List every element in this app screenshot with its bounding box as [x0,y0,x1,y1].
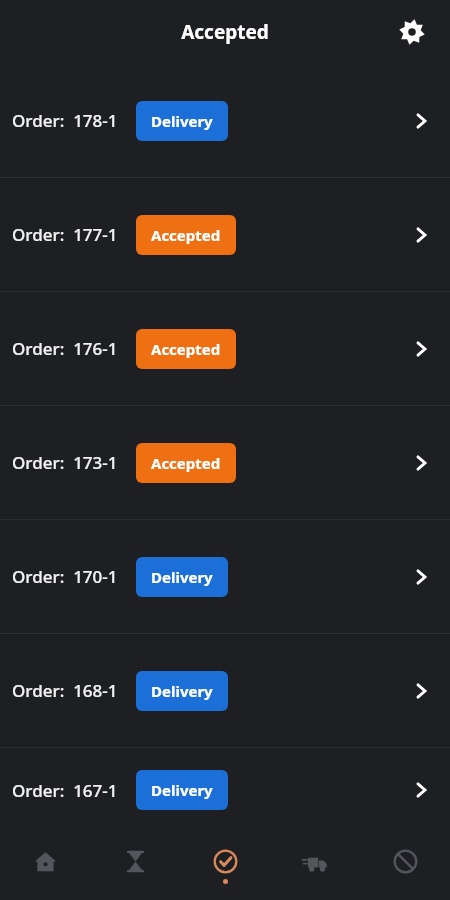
staticText: Delivery [151,111,213,131]
button[interactable]: Accepted [180,832,270,900]
button[interactable]: Open order 167-1 [404,773,438,807]
button[interactable]: Delivery [136,101,228,141]
button[interactable]: Accepted [136,443,236,483]
staticText: Order: 178-1 [12,109,118,132]
button[interactable]: Accepted [136,329,236,369]
staticText: Delivery [151,780,213,800]
button[interactable]: Open order 170-1 [404,560,438,594]
button[interactable]: Order: 173-1 [0,406,450,519]
button[interactable]: Order: 176-1 [0,292,450,405]
button[interactable]: Delivery [136,770,228,810]
button[interactable]: Delivery [136,557,228,597]
button[interactable]: Delivery [136,671,228,711]
staticText: Order: 170-1 [12,565,118,588]
staticText: Accepted [151,339,221,359]
staticText: Delivery [151,681,213,701]
staticText: Order: 177-1 [12,223,118,246]
button[interactable]: Open order 168-1 [404,674,438,708]
button[interactable]: Open order 177-1 [404,218,438,252]
staticText: Delivery [151,567,213,587]
staticText: Order: 168-1 [12,679,118,702]
button[interactable]: Order: 177-1 [0,178,450,291]
button[interactable]: Order: 167-1 [0,748,450,832]
staticText: Order: 167-1 [12,779,118,802]
button[interactable]: Accepted [136,215,236,255]
staticText: Accepted [151,453,221,473]
button[interactable]: Open order 178-1 [404,104,438,138]
staticText: Order: 173-1 [12,451,118,474]
button[interactable]: Settings [392,12,432,52]
staticText: Accepted [151,225,221,245]
button[interactable]: Cancelled [360,832,450,900]
staticText: Accepted [181,19,269,45]
button[interactable]: Order: 170-1 [0,520,450,633]
button[interactable]: Home [0,832,90,900]
button[interactable]: Order: 178-1 [0,64,450,177]
button[interactable]: Open order 176-1 [404,332,438,366]
button[interactable]: Delivery [270,832,360,900]
button[interactable]: Open order 173-1 [404,446,438,480]
button[interactable]: Order: 168-1 [0,634,450,747]
button[interactable]: Pending [90,832,180,900]
staticText: Order: 176-1 [12,337,118,360]
